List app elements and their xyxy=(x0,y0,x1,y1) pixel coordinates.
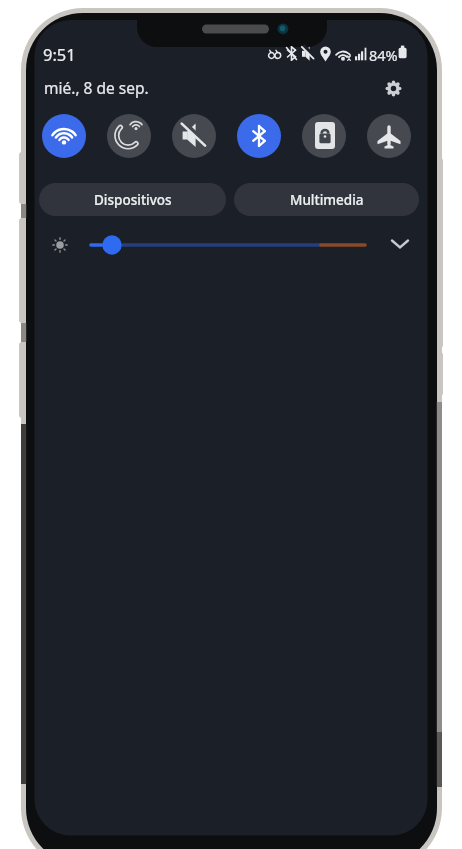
button[interactable] xyxy=(302,114,346,158)
button[interactable] xyxy=(84,230,374,260)
staticText: mié., 8 de sep. xyxy=(44,77,149,98)
button[interactable] xyxy=(237,114,281,158)
staticText: 84% xyxy=(369,45,398,65)
staticText: 9:51 xyxy=(43,43,76,65)
staticText: Multimedia xyxy=(290,191,364,209)
button[interactable]: mié., 8 de sep. xyxy=(42,76,147,97)
button[interactable]: Multimedia xyxy=(234,183,419,216)
button[interactable] xyxy=(387,234,413,254)
button[interactable] xyxy=(367,114,411,158)
button[interactable] xyxy=(42,114,86,158)
button[interactable] xyxy=(384,79,403,98)
staticText: Dispositivos xyxy=(94,191,172,209)
button[interactable]: Dispositivos xyxy=(39,183,226,216)
button[interactable] xyxy=(107,114,151,158)
button[interactable] xyxy=(172,114,216,158)
